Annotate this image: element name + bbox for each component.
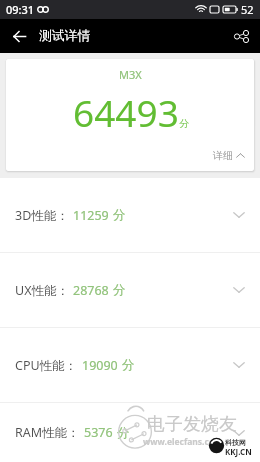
staticText: 5376 bbox=[84, 424, 113, 441]
staticText: 3D性能： bbox=[15, 207, 69, 224]
staticText: www.elecfans.com bbox=[143, 436, 223, 448]
staticText: RAM性能： bbox=[15, 424, 80, 441]
staticText: 分 bbox=[117, 425, 130, 441]
staticText: 19090 bbox=[82, 357, 118, 374]
button[interactable]: 详细 bbox=[213, 149, 254, 171]
staticText: M3X bbox=[119, 67, 142, 82]
staticText: 科技网 bbox=[225, 438, 246, 447]
staticText: 分 bbox=[122, 357, 135, 373]
button[interactable]: CPU性能： bbox=[0, 328, 260, 402]
button[interactable]: 3D性能： bbox=[0, 178, 260, 252]
staticText: 09:31 bbox=[6, 2, 35, 17]
staticText: 52 bbox=[241, 2, 254, 17]
staticText: 分 bbox=[113, 207, 126, 223]
button[interactable]: RAM性能： bbox=[0, 403, 260, 462]
staticText: 测试详情 bbox=[39, 28, 91, 44]
button[interactable]: UX性能： bbox=[0, 253, 260, 327]
staticText: KKJ.CN bbox=[225, 446, 252, 457]
staticText: 分 bbox=[113, 282, 126, 298]
staticText: 64493 bbox=[73, 87, 179, 137]
staticText: CPU性能： bbox=[15, 357, 78, 374]
staticText: 详细 bbox=[213, 149, 233, 162]
staticText: 28768 bbox=[73, 282, 109, 299]
button[interactable]: Back bbox=[6, 23, 32, 49]
staticText: 11259 bbox=[73, 207, 109, 224]
button[interactable]: Share bbox=[227, 22, 255, 50]
staticText: 电子发烧友 bbox=[147, 413, 237, 436]
staticText: 分 bbox=[179, 117, 189, 130]
staticText: UX性能： bbox=[15, 282, 69, 299]
